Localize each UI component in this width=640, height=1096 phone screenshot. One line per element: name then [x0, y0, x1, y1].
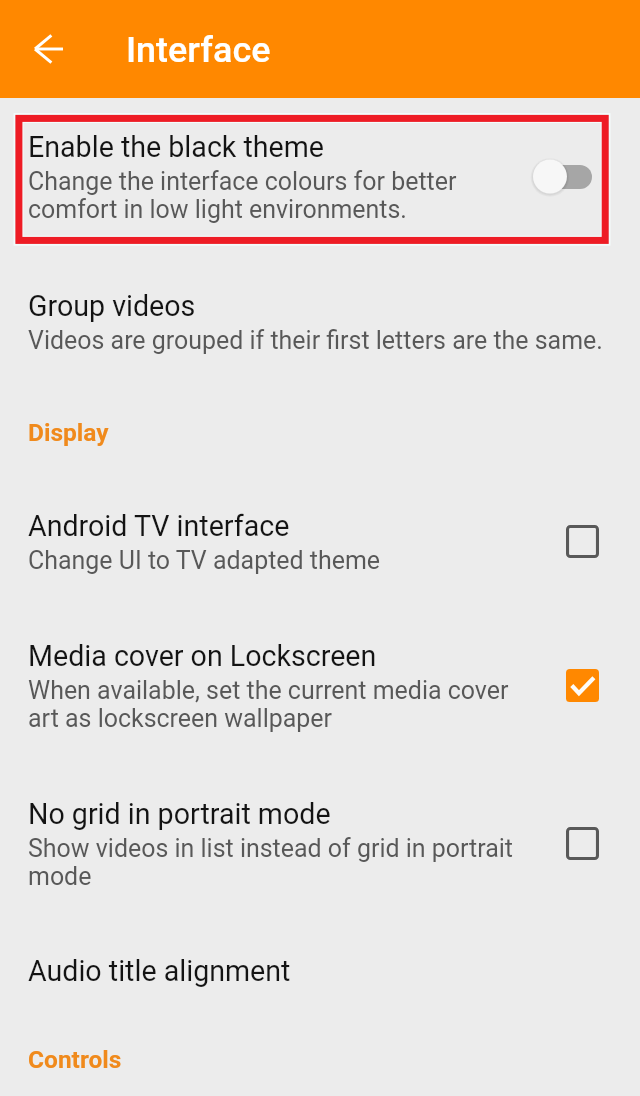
button[interactable]: No grid in portrait mode checkbox, unche…: [566, 827, 599, 860]
button[interactable]: Toggle black theme, off: [533, 157, 592, 196]
staticText: Show videos in list instead of grid in p…: [28, 835, 528, 891]
button[interactable]: Enable the black theme: [0, 98, 640, 242]
button[interactable]: Android TV interface checkbox, unchecked: [566, 525, 599, 558]
staticText: Android TV interface: [28, 508, 290, 543]
button[interactable]: Android TV interface: [0, 461, 640, 603]
staticText: Change UI to TV adapted theme: [28, 547, 381, 575]
staticText: Videos are grouped if their first letter…: [28, 327, 603, 355]
button[interactable]: Group videos: [0, 242, 640, 373]
staticText: Media cover on Lockscreen: [28, 638, 377, 673]
button[interactable]: Audio title alignment: [0, 919, 640, 1027]
staticText: Group videos: [28, 288, 196, 323]
staticText: When available, set the current media co…: [28, 677, 528, 733]
staticText: Display: [28, 417, 109, 447]
staticText: No grid in portrait mode: [28, 796, 331, 831]
button[interactable]: Navigate up: [21, 21, 77, 77]
button[interactable]: Media cover on Lockscreen checkbox, chec…: [566, 669, 599, 702]
staticText: Change the interface colours for better …: [28, 168, 528, 224]
button[interactable]: Media cover on Lockscreen: [0, 603, 640, 761]
staticText: Controls: [28, 1044, 122, 1074]
staticText: Enable the black theme: [28, 129, 324, 164]
staticText: Audio title alignment: [28, 953, 291, 988]
button[interactable]: No grid in portrait mode: [0, 761, 640, 919]
staticText: Interface: [126, 29, 271, 71]
